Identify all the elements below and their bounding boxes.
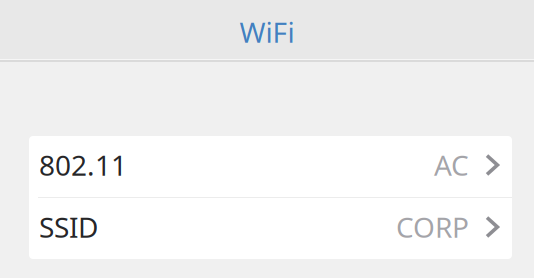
staticText: WiFi [239,13,294,51]
button[interactable]: 802.11 [29,136,512,197]
staticText: 802.11 [39,146,127,184]
staticText: SSID [39,208,98,246]
button[interactable]: SSID [29,198,512,259]
staticText: AC [434,146,469,184]
staticText: CORP [396,208,469,246]
